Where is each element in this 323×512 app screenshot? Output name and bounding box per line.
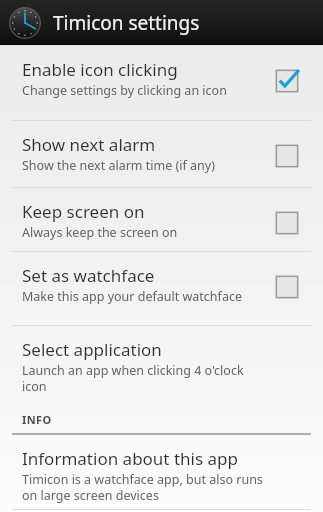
button[interactable]: Show next alarm bbox=[0, 121, 323, 187]
other: Timicon app icon bbox=[8, 6, 42, 40]
staticText: Make this app your default watchface bbox=[22, 288, 242, 305]
staticText: Always keep the screen on bbox=[22, 224, 178, 241]
staticText: Set as watchface bbox=[22, 264, 155, 287]
button[interactable]: Keep screen on bbox=[0, 188, 323, 251]
button[interactable]: Enable icon clicking bbox=[0, 45, 323, 120]
staticText: INFO bbox=[22, 412, 52, 427]
staticText: Information about this app bbox=[22, 447, 238, 470]
staticText: Keep screen on bbox=[22, 200, 145, 223]
staticText: Show next alarm bbox=[22, 133, 156, 156]
button[interactable]: Set as watchface, unchecked bbox=[273, 273, 301, 301]
staticText: Show the next alarm time (if any) bbox=[22, 157, 215, 174]
staticText: Select application bbox=[22, 338, 162, 361]
button[interactable]: Set as watchface bbox=[0, 252, 323, 325]
staticText: Change settings by clicking an icon bbox=[22, 82, 227, 99]
button[interactable]: Information about this app bbox=[0, 435, 323, 509]
staticText: Launch an app when clicking 4 o'clock ic… bbox=[22, 362, 263, 394]
staticText: Timicon is a watchface app, but also run… bbox=[22, 471, 263, 503]
button[interactable]: Enable icon clicking, checked bbox=[273, 67, 301, 95]
button[interactable]: Keep screen on, unchecked bbox=[273, 209, 301, 237]
button[interactable]: Select application bbox=[0, 326, 323, 399]
staticText: Enable icon clicking bbox=[22, 58, 178, 81]
staticText: Timicon settings bbox=[53, 10, 200, 36]
button[interactable]: Show next alarm, unchecked bbox=[273, 142, 301, 170]
